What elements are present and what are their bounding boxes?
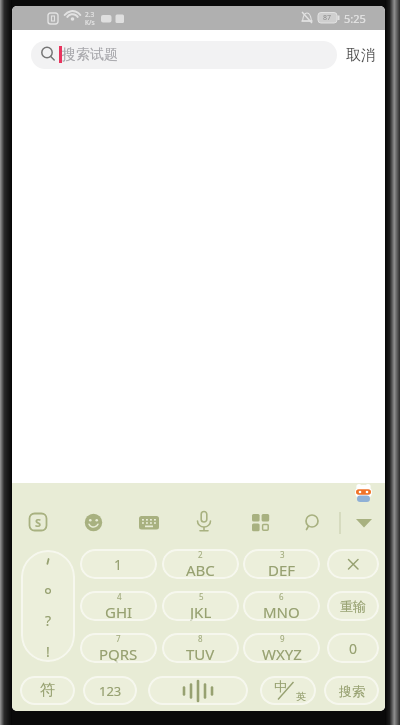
button[interactable]: 取消 — [340, 41, 382, 69]
button[interactable]: 6 — [243, 591, 320, 621]
button[interactable]: 9 — [243, 633, 320, 663]
button[interactable]: 搜索试题 — [31, 41, 337, 69]
staticText: ? — [45, 611, 52, 630]
staticText: MNO — [263, 602, 300, 621]
button[interactable] — [196, 511, 212, 533]
staticText: GHI — [105, 602, 133, 621]
staticText: ! — [46, 642, 50, 661]
button[interactable]: 123 — [83, 676, 137, 705]
button[interactable]: 3 — [243, 549, 320, 579]
staticText: TUV — [186, 644, 215, 663]
staticText: 重输 — [340, 598, 366, 614]
button[interactable]: 0 — [327, 633, 379, 663]
staticText: 符 — [40, 681, 55, 700]
staticText: DEF — [268, 560, 296, 579]
staticText: 8 — [198, 633, 203, 644]
button[interactable]: 8 — [162, 633, 239, 663]
button[interactable] — [327, 549, 379, 579]
staticText: 0 — [349, 639, 358, 658]
staticText: 搜索 — [339, 683, 365, 699]
staticText: 4 — [117, 591, 122, 602]
staticText: WXYZ — [262, 644, 302, 663]
staticText: 2.3 K/s — [85, 10, 95, 27]
staticText: 2 — [198, 549, 203, 560]
button[interactable]: 5 — [162, 591, 239, 621]
staticText: 取消 — [346, 46, 376, 65]
button[interactable]: 重输 — [327, 591, 379, 621]
button[interactable] — [148, 676, 248, 705]
staticText: JKL — [190, 602, 212, 621]
staticText: ABC — [186, 560, 215, 579]
staticText: 87 — [323, 13, 332, 23]
staticText: 9 — [280, 633, 285, 644]
button[interactable]: ? — [21, 550, 75, 662]
button[interactable]: 2 — [162, 549, 239, 579]
staticText: 5 — [199, 591, 204, 602]
button[interactable]: 7 — [80, 633, 157, 663]
staticText: 中 — [274, 678, 287, 694]
staticText: PQRS — [99, 644, 138, 663]
button[interactable]: 1 — [80, 549, 157, 579]
staticText: 6 — [279, 591, 284, 602]
button[interactable] — [304, 514, 321, 531]
button[interactable] — [252, 514, 270, 532]
button[interactable] — [139, 516, 159, 530]
button[interactable]: S — [29, 513, 47, 531]
button[interactable]: 符 — [20, 676, 75, 705]
staticText: 搜索试题 — [62, 46, 118, 64]
button[interactable]: 搜索 — [324, 676, 379, 705]
staticText: S — [35, 515, 42, 530]
button[interactable]: 4 — [80, 591, 157, 621]
button[interactable]: 中 — [260, 676, 316, 705]
button[interactable] — [84, 513, 103, 532]
staticText: 3 — [280, 549, 285, 560]
staticText: 1 — [114, 555, 123, 574]
staticText: 英 — [296, 690, 306, 703]
staticText: 123 — [99, 682, 122, 700]
staticText: 5:25 — [344, 11, 366, 26]
staticText: 7 — [116, 633, 121, 644]
button[interactable] — [339, 512, 385, 534]
